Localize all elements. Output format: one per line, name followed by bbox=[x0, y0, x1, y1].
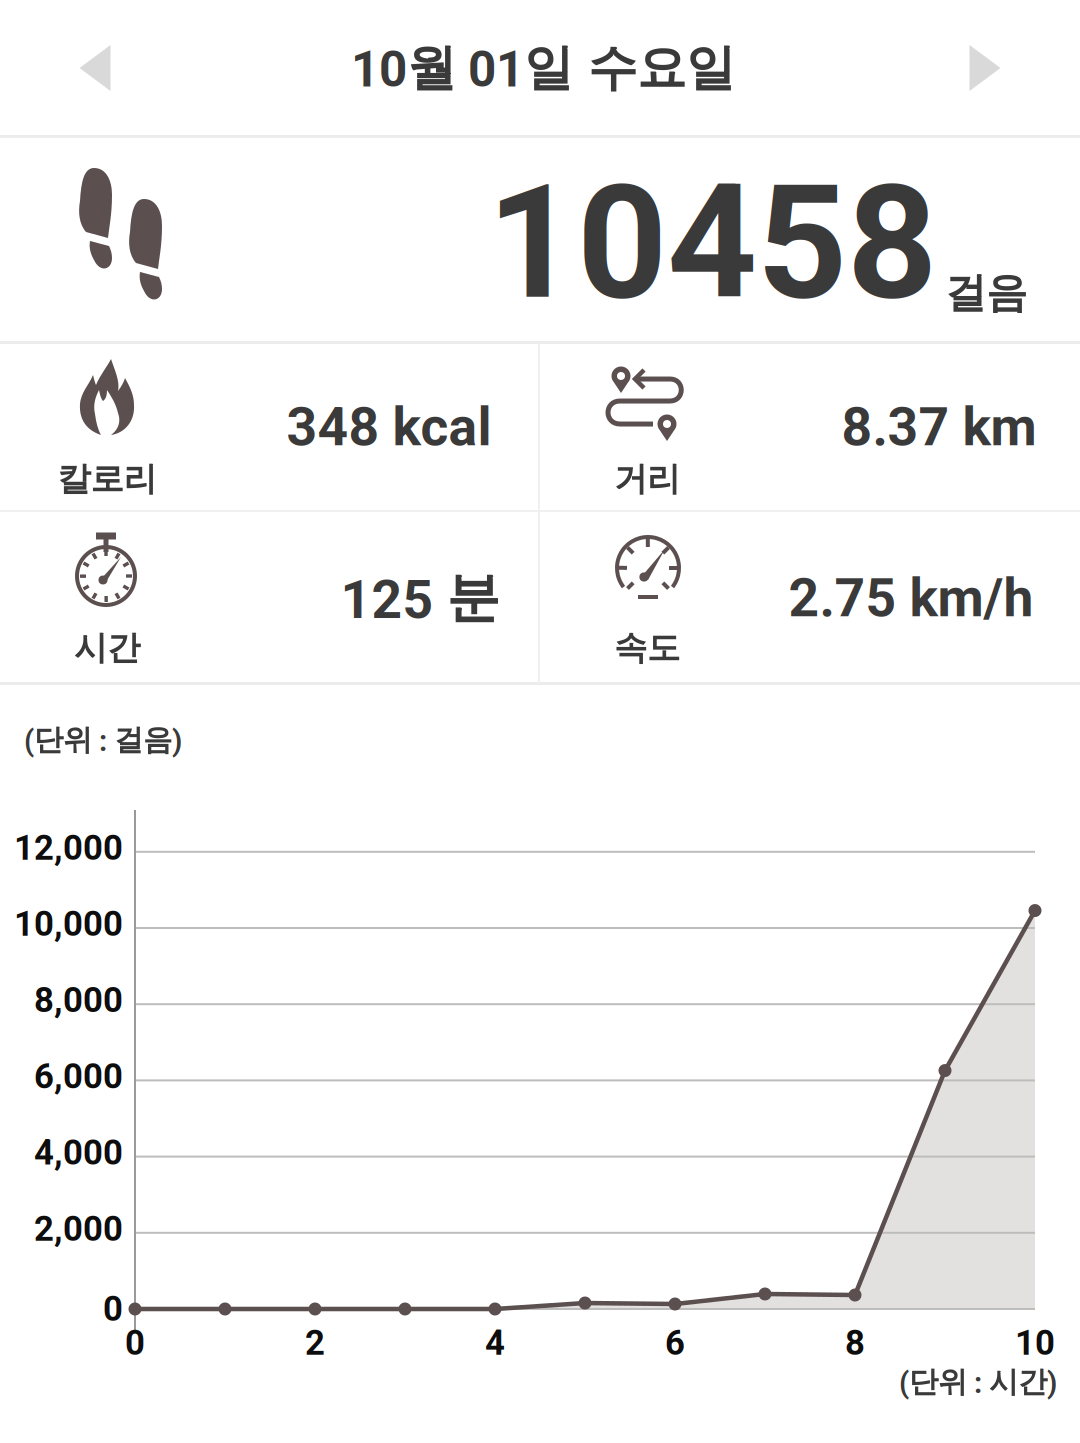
staticText: 348 kcal bbox=[286, 396, 491, 458]
staticText: (단위 : 시간) bbox=[899, 1363, 1057, 1400]
button[interactable]: Previous day bbox=[20, 1, 170, 135]
staticText: 2,000 bbox=[34, 1208, 123, 1249]
staticText: 거리 bbox=[614, 458, 680, 500]
staticText: (단위 : 걸음) bbox=[24, 721, 182, 758]
staticText: 10월 01일 수요일 bbox=[351, 37, 735, 99]
staticText: 걸음 bbox=[945, 267, 1027, 319]
staticText: 10458 bbox=[487, 151, 937, 335]
staticText: 12,000 bbox=[14, 827, 123, 868]
staticText: 2 bbox=[305, 1323, 325, 1363]
staticText: 칼로리 bbox=[57, 458, 156, 500]
staticText: 10,000 bbox=[14, 904, 123, 944]
button[interactable]: Next day bbox=[910, 1, 1060, 135]
staticText: 0 bbox=[103, 1289, 123, 1329]
staticText: 0 bbox=[125, 1323, 145, 1363]
staticText: 4,000 bbox=[34, 1132, 123, 1173]
staticText: 125 분 bbox=[340, 564, 499, 632]
staticText: 2.75 km/h bbox=[788, 567, 1033, 629]
staticText: 8 bbox=[845, 1323, 865, 1363]
staticText: 4 bbox=[485, 1323, 505, 1363]
staticText: 시간 bbox=[74, 627, 140, 669]
staticText: 8,000 bbox=[34, 980, 123, 1020]
staticText: 6 bbox=[665, 1323, 685, 1363]
staticText: 6,000 bbox=[34, 1056, 123, 1097]
staticText: 10 bbox=[1015, 1323, 1055, 1363]
staticText: 속도 bbox=[614, 627, 680, 669]
staticText: 8.37 km bbox=[841, 396, 1036, 458]
